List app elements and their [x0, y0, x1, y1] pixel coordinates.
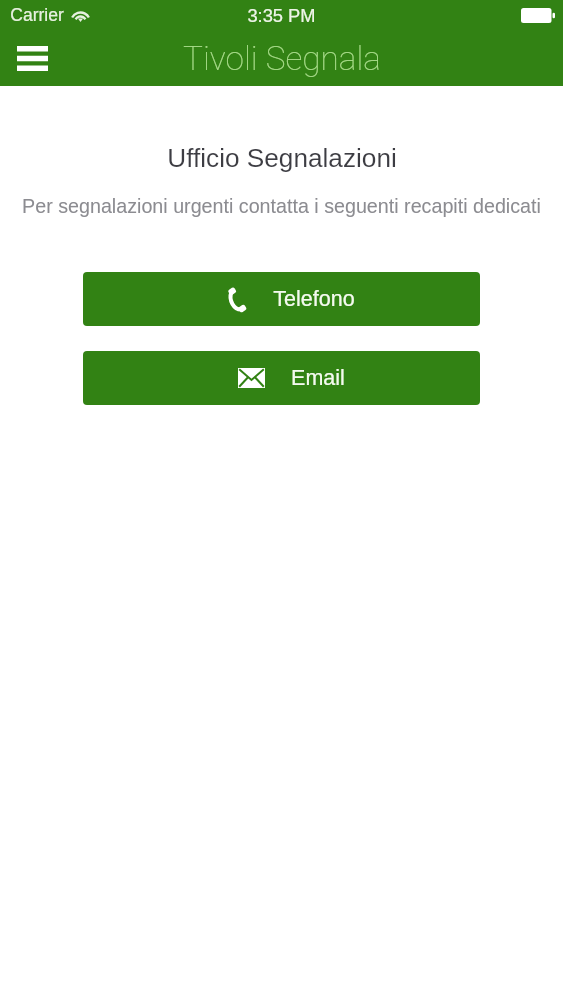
button[interactable]: Open navigation menu: [8, 34, 56, 82]
staticText: 3:35 PM: [247, 5, 316, 25]
button[interactable]: Telefono: [83, 272, 480, 326]
staticText: Telefono: [273, 287, 355, 311]
staticText: Tivoli Segnala: [183, 39, 381, 78]
staticText: Carrier: [10, 5, 64, 25]
staticText: Per segnalazioni urgenti contatta i segu…: [22, 195, 541, 217]
staticText: Email: [291, 366, 345, 390]
staticText: Ufficio Segnalazioni: [167, 143, 397, 172]
button[interactable]: Email: [83, 351, 480, 405]
